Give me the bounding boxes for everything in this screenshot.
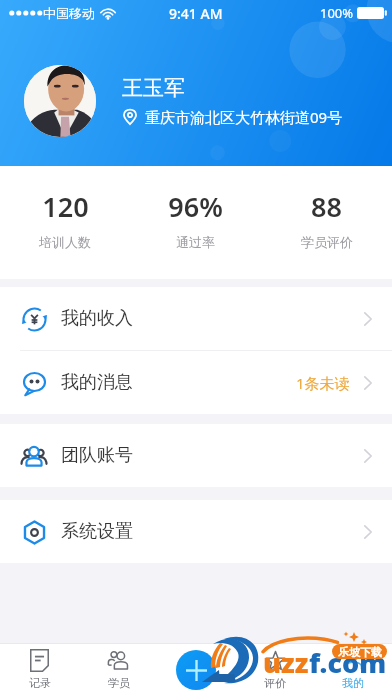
staticText: 96%: [168, 188, 223, 225]
staticText: 120: [42, 188, 89, 225]
staticText: 学员: [108, 676, 130, 690]
button[interactable]: 系统设置: [0, 500, 392, 563]
staticText: 评价: [264, 676, 286, 690]
staticText: 记录: [29, 676, 51, 690]
button[interactable]: 我的消息: [0, 351, 392, 414]
staticText: 100%: [320, 4, 354, 22]
button[interactable]: 评价: [236, 643, 314, 696]
staticText: 9:41 AM: [169, 4, 223, 23]
staticText: 通过率: [176, 234, 215, 250]
staticText: 中国移动: [43, 5, 95, 21]
staticText: 团队账号: [61, 444, 133, 467]
staticText: 我的收入: [61, 307, 133, 330]
staticText: 乐坡下载: [338, 645, 382, 659]
staticText: uzz: [263, 644, 309, 681]
staticText: 1条未读: [296, 373, 350, 393]
staticText: 我的: [342, 676, 364, 690]
button[interactable]: 学员: [79, 643, 158, 696]
button[interactable]: 记录: [0, 643, 79, 696]
staticText: 学员评价: [301, 234, 353, 250]
button[interactable]: 团队账号: [0, 424, 392, 487]
staticText: 88: [311, 188, 342, 225]
button[interactable]: 我的收入: [0, 287, 392, 350]
button[interactable]: 我的: [314, 643, 392, 696]
staticText: 王玉军: [122, 75, 185, 101]
staticText: 培训人数: [39, 234, 91, 250]
staticText: f.com: [309, 644, 387, 681]
staticText: 我的消息: [61, 371, 133, 394]
staticText: 系统设置: [61, 520, 133, 543]
button[interactable]: Add: [176, 650, 216, 690]
staticText: 重庆市渝北区大竹林街道09号: [145, 107, 343, 127]
